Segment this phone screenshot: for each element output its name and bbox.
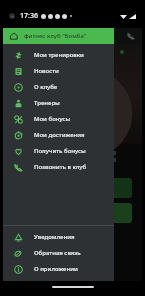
staticText: Мои тренировки xyxy=(34,51,84,59)
staticText: Позвонить в клуб xyxy=(34,163,87,171)
button[interactable]: Мои бонусы xyxy=(3,111,114,127)
staticText: О клубе xyxy=(34,83,58,91)
staticText: Уведомления xyxy=(34,233,75,241)
staticText: 17:36 xyxy=(20,11,38,21)
button[interactable] xyxy=(13,178,132,198)
button[interactable]: Обратная связь xyxy=(3,245,114,261)
staticText: О приложении xyxy=(34,265,78,273)
staticText: Мои бонусы xyxy=(34,115,71,123)
button[interactable]: Новости xyxy=(3,63,114,79)
button[interactable]: О приложении xyxy=(3,261,114,277)
button[interactable]: Уведомления xyxy=(3,229,114,245)
button[interactable]: Мои достижения xyxy=(3,127,114,143)
button[interactable]: Call club xyxy=(125,30,137,42)
button[interactable]: Мои тренировки xyxy=(3,47,114,63)
button[interactable]: Позвонить в клуб xyxy=(3,159,114,175)
button[interactable]: Тренеры xyxy=(3,95,114,111)
staticText: Тренеры xyxy=(34,99,60,107)
staticText: фитнес клуб "Бомба" xyxy=(24,32,87,40)
staticText: Мои достижения xyxy=(34,131,85,139)
staticText: Новости xyxy=(34,67,59,75)
button[interactable]: фитнес клуб "Бомба" xyxy=(3,28,114,44)
staticText: Обратная связь xyxy=(34,249,81,257)
staticText: Получить бонусы xyxy=(34,147,86,155)
button[interactable]: О клубе xyxy=(3,79,114,95)
button[interactable]: Получить бонусы xyxy=(3,143,114,159)
button[interactable]: кабинет xyxy=(13,203,132,223)
